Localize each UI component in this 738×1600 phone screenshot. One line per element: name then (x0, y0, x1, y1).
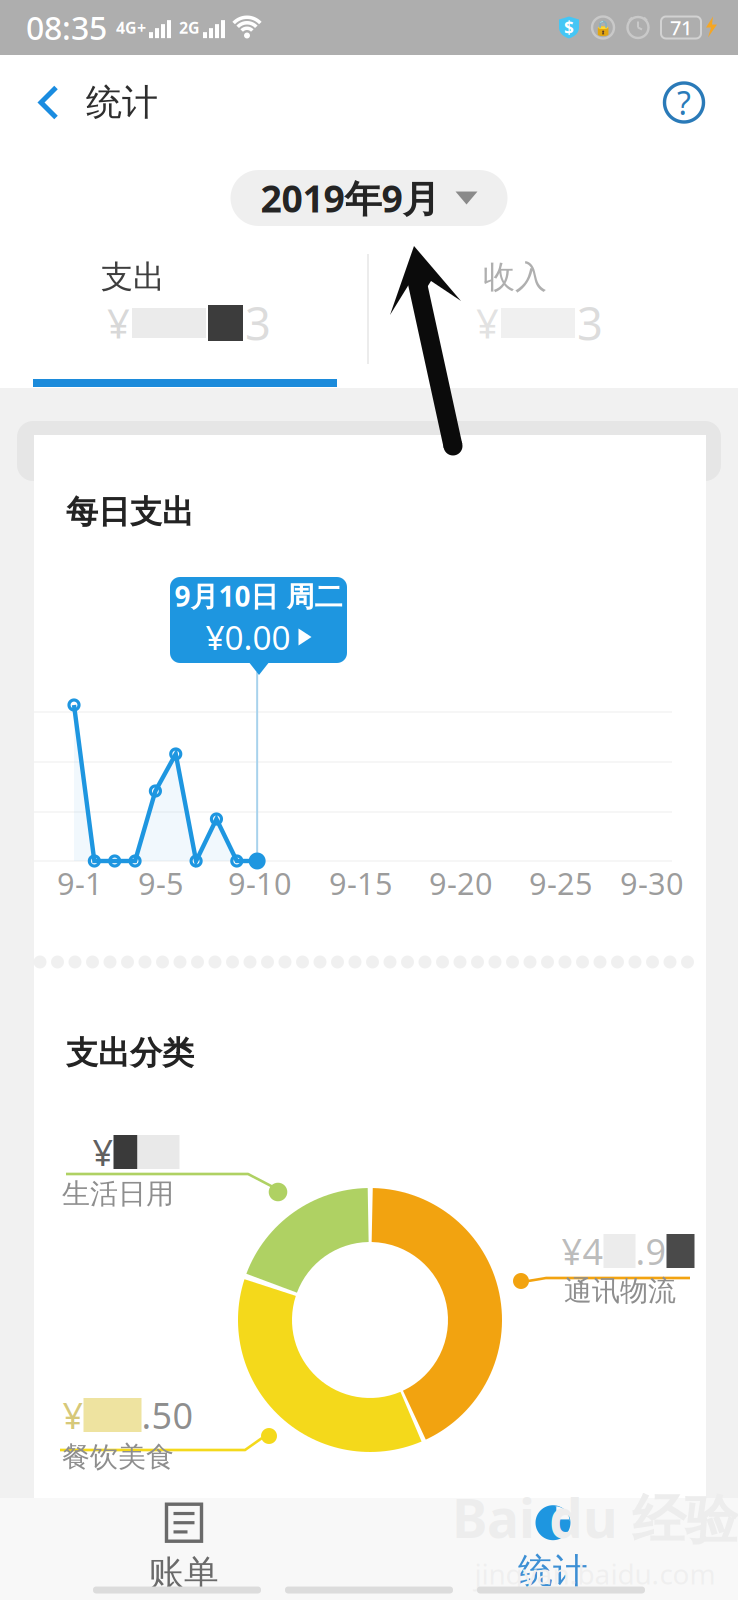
staticText: 9-15 (329, 863, 393, 903)
staticText: 🔒 (594, 19, 612, 36)
staticText: 统计 (86, 80, 158, 125)
staticText: 9-1 (57, 863, 103, 903)
staticText: 通讯物流 (564, 1274, 676, 1308)
staticText: 账单 (149, 1552, 219, 1594)
button[interactable]: 收入 (368, 246, 738, 388)
staticText: ? (677, 81, 691, 124)
staticText: ¥ (107, 296, 130, 349)
staticText: 每日支出 (66, 492, 194, 532)
staticText: 3 (245, 293, 271, 353)
button[interactable]: Help (656, 74, 712, 130)
staticText: 4G+ (116, 17, 146, 38)
staticText: 收入 (483, 257, 547, 297)
button[interactable]: 统计 (473, 1500, 633, 1595)
staticText: 餐饮美食 (62, 1440, 174, 1474)
staticText: 支出分类 (66, 1033, 194, 1073)
staticText: .50 (141, 1391, 193, 1439)
button[interactable]: Back (20, 63, 78, 141)
staticText: 3 (577, 293, 603, 353)
staticText: Bai du 经验 (452, 1482, 738, 1553)
staticText: ¥ (62, 1391, 83, 1439)
staticText: ¥4 (561, 1227, 603, 1275)
staticText: 9-20 (429, 863, 493, 903)
staticText: ¥ (92, 1128, 113, 1176)
staticText: 08:35 (26, 6, 107, 49)
staticText: ¥ (476, 296, 499, 349)
staticText: 2G (179, 17, 200, 38)
staticText: 9-30 (620, 863, 684, 903)
button[interactable]: 支出 (0, 246, 368, 388)
staticText: 9-10 (228, 863, 292, 903)
staticText: $ (564, 16, 574, 39)
staticText: jingyan.baidu.com (474, 1555, 715, 1592)
staticText: 71 (670, 14, 692, 41)
button[interactable]: 账单 (104, 1500, 264, 1595)
staticText: .9 (635, 1227, 666, 1275)
staticText: 9-25 (529, 863, 593, 903)
staticText: 9-5 (138, 863, 184, 903)
staticText: 9月10日 周二 (174, 577, 342, 614)
staticText: 支出 (101, 257, 165, 297)
staticText: 统计 (518, 1550, 588, 1592)
staticText: ¥0.00 (205, 615, 290, 659)
button[interactable]: 2019年9月 (230, 170, 507, 226)
staticText: 生活日用 (62, 1177, 174, 1211)
staticText: 2019年9月 (260, 173, 439, 223)
